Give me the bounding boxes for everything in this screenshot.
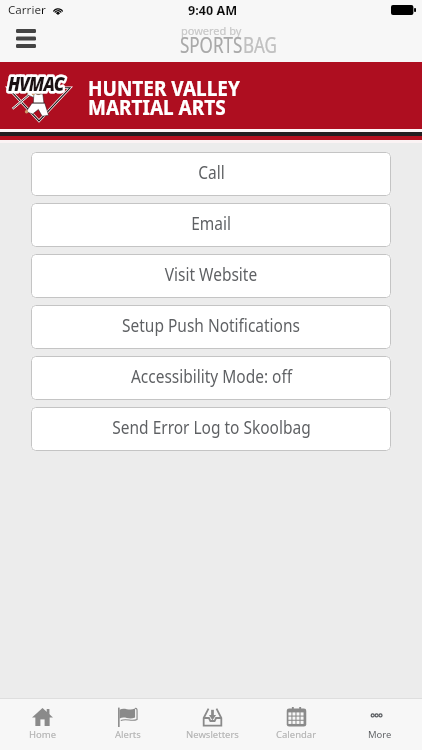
staticText: BAG (243, 30, 277, 60)
staticText: Call (198, 160, 225, 184)
staticText: Setup Push Notifications (122, 313, 300, 337)
button[interactable]: Alerts (85, 699, 170, 750)
staticText: Carrier (8, 2, 46, 18)
staticText: HVMAC (8, 70, 64, 97)
button[interactable]: Newsletters (170, 699, 254, 750)
button[interactable]: Accessibility Mode: off (31, 356, 391, 400)
staticText: Accessibility Mode: off (131, 364, 292, 388)
button[interactable]: Email (31, 203, 391, 247)
button[interactable]: Calendar (254, 699, 338, 750)
staticText: Alerts (115, 728, 141, 741)
staticText: HUNTER VALLEY (88, 74, 240, 103)
button[interactable]: Menu (9, 23, 42, 53)
staticText: HVMAC (8, 70, 64, 97)
button[interactable]: Send Error Log to Skoolbag (31, 407, 391, 451)
staticText: More (368, 728, 392, 741)
staticText: 9:40 AM (188, 2, 238, 19)
button[interactable]: Home (0, 699, 85, 750)
staticText: SPORTS (180, 30, 243, 60)
staticText: Visit Website (165, 262, 257, 286)
staticText: MARTIAL ARTS (88, 93, 226, 122)
button[interactable]: Call (31, 152, 391, 196)
staticText: Email (191, 211, 231, 235)
staticText: powered by (181, 23, 242, 38)
staticText: Home (29, 728, 57, 741)
button[interactable]: Visit Website (31, 254, 391, 298)
staticText: Send Error Log to Skoolbag (112, 415, 311, 439)
staticText: Newsletters (186, 728, 239, 741)
button[interactable]: More (338, 699, 422, 750)
button[interactable]: Setup Push Notifications (31, 305, 391, 349)
staticText: Calendar (276, 728, 317, 741)
